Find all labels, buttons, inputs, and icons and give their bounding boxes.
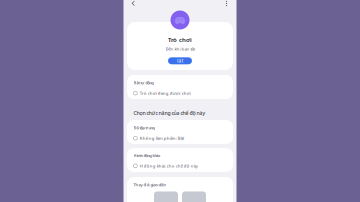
- staticText: Trò chơi: [168, 35, 192, 44]
- staticText: Thay đổi giao diện: [133, 182, 166, 187]
- staticText: Bật tự động: [133, 80, 153, 85]
- button[interactable]: More options: [224, 0, 229, 6]
- staticText: Trò chơi đang được chơi: [140, 90, 191, 96]
- staticText: Chọn chức năng của chế độ này: [133, 109, 205, 117]
- button[interactable]: Bật tự động: [127, 75, 233, 99]
- staticText: Tắt: [176, 58, 183, 64]
- staticText: H động khác cho chế độ này: [140, 163, 198, 169]
- staticText: Không làm phiền: Bật: [140, 135, 185, 141]
- button[interactable]: Back: [131, 0, 136, 6]
- staticText: Độ tập trung: [133, 125, 154, 130]
- staticText: Hành động khác: [133, 153, 160, 158]
- button[interactable]: Hành động khác: [127, 148, 233, 172]
- staticText: Đến khi bạn tắt: [165, 46, 194, 52]
- button[interactable]: Độ tập trung: [127, 120, 233, 144]
- button[interactable]: Tắt: [168, 57, 192, 64]
